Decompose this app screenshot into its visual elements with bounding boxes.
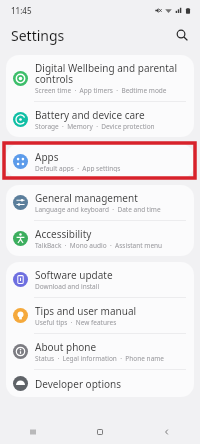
staticText: Status · Legal information · Phone name: [35, 354, 165, 363]
staticText: Language and keyboard · Date and time: [35, 205, 161, 214]
staticText: Software update: [35, 268, 113, 282]
staticText: Developer options: [35, 377, 122, 391]
button[interactable]: Recents: [0, 420, 66, 444]
staticText: Digital Wellbeing and parental controls: [35, 61, 187, 86]
button[interactable]: Battery and device care: [6, 102, 194, 137]
staticText: Useful tips · New features: [35, 318, 117, 327]
staticText: Accessibility: [35, 227, 92, 241]
staticText: Default apps · App settings: [35, 164, 121, 172]
staticText: Download and install: [35, 282, 100, 291]
button[interactable]: Software update: [6, 262, 194, 297]
button[interactable]: Home: [66, 420, 133, 444]
button[interactable]: About phone: [6, 334, 194, 369]
button[interactable]: Search: [171, 24, 193, 46]
staticText: Apps: [35, 150, 59, 164]
staticText: TalkBack · Mono audio · Assistant menu: [35, 241, 163, 250]
button[interactable]: Tips and user manual: [6, 298, 194, 333]
staticText: General management: [35, 191, 138, 205]
staticText: Storage · Memory · Device protection: [35, 122, 155, 131]
button[interactable]: Developer options: [6, 370, 194, 397]
staticText: Tips and user manual: [35, 304, 137, 318]
staticText: Settings: [11, 26, 65, 45]
staticText: About phone: [35, 340, 97, 354]
button[interactable]: General management: [6, 185, 194, 220]
staticText: Battery and device care: [35, 108, 145, 122]
button[interactable]: Digital Wellbeing and parental controls: [6, 55, 194, 101]
button[interactable]: Back: [133, 420, 200, 444]
button[interactable]: Accessibility: [6, 221, 194, 256]
staticText: Screen time · App timers · Bedtime mode: [35, 86, 167, 95]
button[interactable]: Apps: [6, 144, 194, 178]
staticText: 11:45: [11, 5, 32, 16]
